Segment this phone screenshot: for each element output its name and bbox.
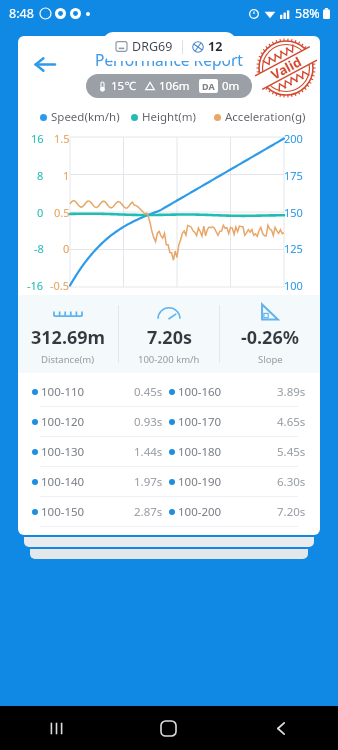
- staticText: 1.5: [54, 131, 70, 146]
- staticText: 6.30s: [277, 474, 306, 490]
- button[interactable]: 100-130: [18, 437, 320, 466]
- button[interactable]: DRG69: [103, 32, 236, 61]
- staticText: -16: [27, 278, 44, 293]
- staticText: 8: [37, 168, 44, 183]
- staticText: 5.45s: [277, 444, 306, 460]
- staticText: Performance Report: [95, 49, 243, 70]
- button[interactable]: Home: [112, 706, 225, 750]
- staticText: 100-180: [178, 444, 222, 460]
- staticText: 0.93s: [134, 414, 163, 430]
- staticText: 312.69m: [31, 325, 106, 350]
- staticText: 2.87s: [134, 504, 163, 520]
- staticText: 12: [208, 38, 223, 55]
- staticText: 15℃: [111, 78, 136, 94]
- staticText: 1: [63, 168, 70, 183]
- staticText: 100-160: [178, 384, 222, 400]
- staticText: Acceleration(g): [225, 109, 306, 125]
- staticText: 0m: [222, 78, 240, 94]
- staticText: 100-140: [41, 474, 85, 490]
- staticText: -0.26%: [241, 325, 299, 350]
- staticText: 0: [63, 241, 70, 256]
- staticText: Valid: [268, 52, 304, 83]
- staticText: 100-170: [178, 414, 222, 430]
- staticText: 106m: [159, 78, 190, 94]
- staticText: 4.65s: [277, 414, 306, 430]
- button[interactable]: Back: [225, 706, 338, 750]
- staticText: Speed(km/h): [51, 109, 120, 125]
- staticText: 100-150: [41, 504, 85, 520]
- staticText: Height(m): [142, 109, 196, 125]
- button[interactable]: Back: [26, 46, 62, 82]
- button[interactable]: 100-150: [18, 497, 320, 526]
- button[interactable]: 100-110: [18, 377, 320, 406]
- staticText: 3.89s: [277, 384, 306, 400]
- staticText: Distance(m): [41, 353, 95, 366]
- staticText: 100-190: [178, 474, 222, 490]
- button[interactable]: 100-140: [18, 467, 320, 496]
- staticText: 0.5: [54, 205, 70, 220]
- staticText: 58%: [295, 5, 320, 22]
- staticText: Slope: [258, 353, 283, 366]
- staticText: 1.44s: [134, 444, 163, 460]
- staticText: 0.45s: [134, 384, 163, 400]
- staticText: -8: [34, 241, 44, 256]
- staticText: DRG69: [132, 38, 173, 55]
- staticText: 100-110: [41, 384, 85, 400]
- staticText: 100-200 km/h: [138, 353, 200, 366]
- staticText: 100: [284, 278, 303, 293]
- staticText: 0: [37, 205, 44, 220]
- button[interactable]: 100-120: [18, 407, 320, 436]
- staticText: -0.5: [50, 278, 70, 293]
- button[interactable]: 312.69m: [18, 295, 118, 373]
- staticText: 16: [31, 131, 44, 146]
- staticText: 100-130: [41, 444, 85, 460]
- staticText: 8:48: [9, 5, 34, 22]
- button[interactable]: Recent apps: [0, 706, 112, 750]
- staticText: 100-200: [178, 504, 222, 520]
- staticText: 150: [284, 205, 303, 220]
- button[interactable]: 7.20s: [119, 295, 219, 373]
- staticText: 200: [284, 131, 303, 146]
- staticText: 7.20s: [277, 504, 306, 520]
- staticText: 175: [284, 168, 303, 183]
- staticText: 1.97s: [134, 474, 163, 490]
- staticText: DA: [202, 80, 215, 92]
- staticText: 100-120: [41, 414, 85, 430]
- button[interactable]: -0.26%: [220, 295, 320, 373]
- staticText: 125: [284, 241, 303, 256]
- staticText: 7.20s: [147, 325, 192, 350]
